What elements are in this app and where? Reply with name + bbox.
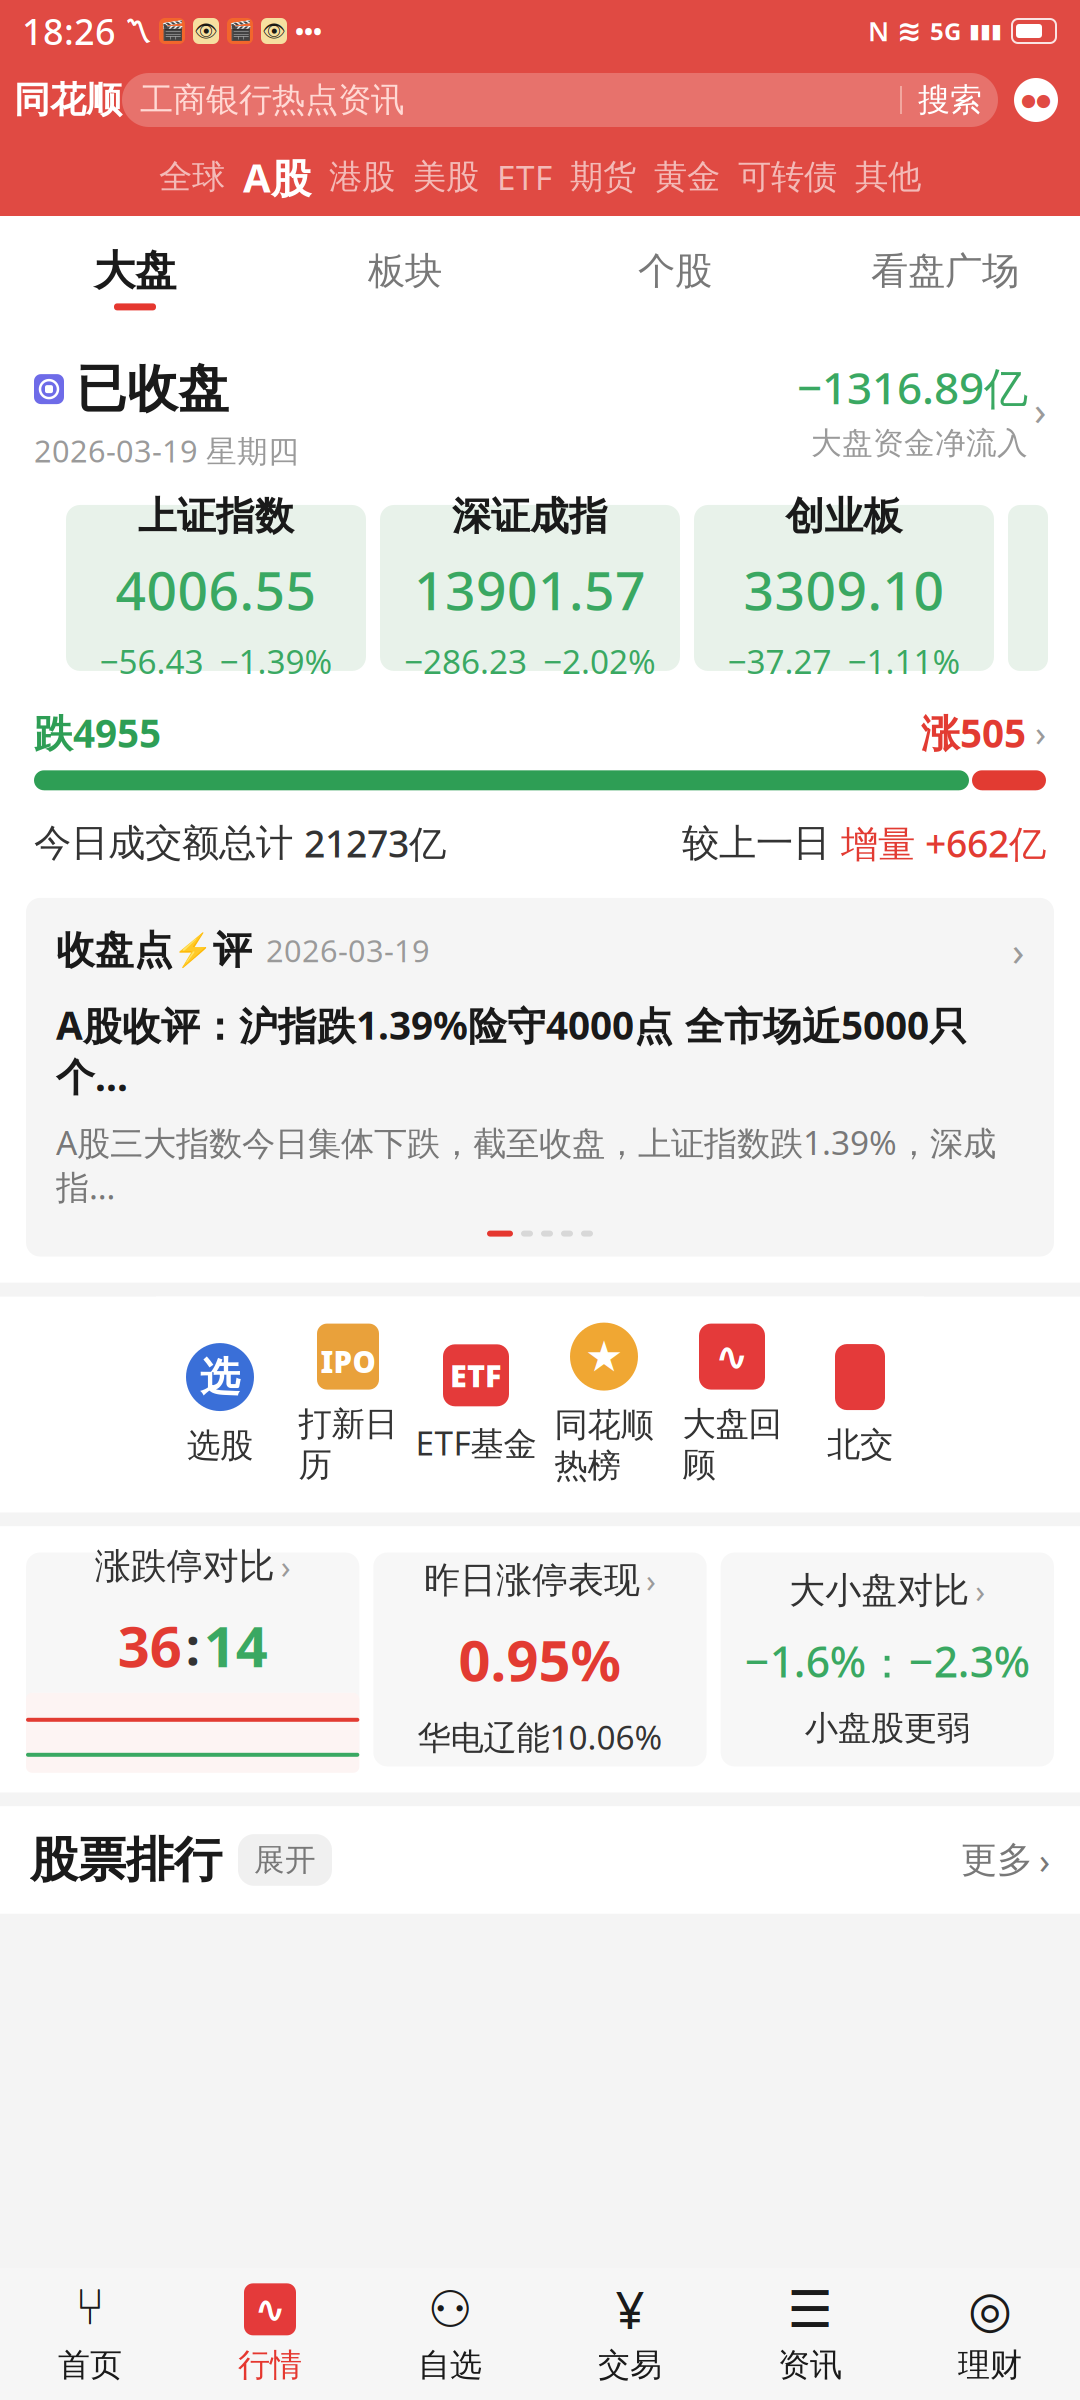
- button[interactable]: ∿: [668, 1324, 796, 1485]
- staticText: −286.23: [404, 639, 527, 683]
- button[interactable]: ETF: [488, 138, 561, 216]
- staticText: 板块: [368, 248, 442, 294]
- staticText: −1.11%: [847, 639, 960, 683]
- button[interactable]: 跌4955: [34, 707, 1046, 758]
- staticText: ›: [281, 1545, 291, 1588]
- button[interactable]: 看盘广场: [810, 232, 1080, 308]
- button[interactable]: 板块: [270, 232, 540, 308]
- staticText: ETF基金: [415, 1420, 536, 1465]
- staticText: 行情: [238, 2345, 302, 2385]
- staticText: 昨日涨停表现: [424, 1558, 640, 1602]
- button[interactable]: 上证指数: [66, 505, 366, 671]
- staticText: 评: [213, 927, 252, 974]
- staticText: ●●: [1021, 90, 1051, 110]
- staticText: 华电辽能10.06%: [417, 1715, 662, 1759]
- staticText: −56.43: [99, 639, 203, 683]
- button[interactable]: 全球: [150, 138, 234, 216]
- staticText: ¥: [615, 2276, 644, 2343]
- button[interactable]: 选: [156, 1343, 284, 1466]
- button[interactable]: 大小盘对比: [721, 1552, 1054, 1766]
- button[interactable]: 收盘点: [26, 898, 1054, 1257]
- staticText: 股票排行: [30, 1830, 222, 1889]
- staticText: 🎬: [160, 20, 183, 42]
- button[interactable]: 大盘: [0, 230, 270, 310]
- staticText: ETF: [497, 155, 552, 199]
- staticText: 涨跌停对比: [95, 1544, 275, 1588]
- button[interactable]: 昨日涨停表现: [373, 1552, 707, 1766]
- staticText: ∿: [715, 1334, 749, 1379]
- staticText: 期货: [570, 156, 636, 197]
- staticText: 自选: [418, 2345, 482, 2385]
- button[interactable]: 黄金: [645, 138, 729, 216]
- button[interactable]: 深证成指: [380, 505, 680, 671]
- staticText: 4006.55: [115, 554, 316, 625]
- button[interactable]: ⚇: [360, 2283, 540, 2385]
- button[interactable]: ⑂: [0, 2283, 180, 2385]
- staticText: 较上一日: [682, 820, 841, 866]
- staticText: 可转债: [738, 156, 837, 197]
- staticText: 展开: [254, 1841, 316, 1879]
- staticText: 理财: [958, 2345, 1022, 2385]
- staticText: 搜索: [918, 80, 982, 120]
- staticText: 5G: [930, 15, 961, 47]
- staticText: −2.02%: [543, 639, 656, 683]
- staticText: 大盘回顾: [682, 1404, 781, 1485]
- button[interactable]: 涨跌停对比: [26, 1552, 359, 1766]
- staticText: ≋: [897, 14, 922, 48]
- staticText: 同花顺: [14, 78, 122, 122]
- staticText: ◎: [968, 2281, 1012, 2338]
- staticText: 已收盘: [76, 358, 229, 420]
- staticText: −1316.89亿: [797, 358, 1028, 416]
- button[interactable]: 北交: [796, 1344, 924, 1465]
- button[interactable]: 工商银行热点资讯: [122, 73, 998, 127]
- staticText: N: [868, 13, 889, 49]
- button[interactable]: ★: [540, 1323, 668, 1486]
- staticText: 黄金: [654, 156, 720, 197]
- button[interactable]: 个股: [540, 232, 810, 308]
- button[interactable]: 可转债: [729, 138, 846, 216]
- staticText: ETF: [450, 1355, 502, 1396]
- staticText: 大盘资金净流入: [811, 424, 1028, 462]
- staticText: 收盘点: [56, 927, 173, 974]
- staticText: 小盘股更弱: [805, 1708, 970, 1748]
- button[interactable]: 展开: [238, 1834, 332, 1886]
- button[interactable]: 智能助手: [998, 70, 1074, 130]
- staticText: 打新日历: [298, 1404, 397, 1485]
- staticText: 跌4955: [34, 707, 161, 758]
- button[interactable]: 更多: [961, 1836, 1050, 1884]
- staticText: 〽: [124, 18, 151, 44]
- staticText: 上证指数: [138, 493, 294, 540]
- staticText: 涨505: [921, 707, 1026, 758]
- staticText: 大小盘对比: [789, 1568, 969, 1613]
- button[interactable]: −1316.89亿: [797, 358, 1046, 462]
- staticText: 深证成指: [452, 493, 608, 540]
- staticText: 增量 +662亿: [841, 818, 1046, 868]
- button[interactable]: 期货: [561, 138, 645, 216]
- staticText: 13901.57: [414, 554, 646, 625]
- staticText: 今日成交额总计: [34, 820, 304, 866]
- button[interactable]: 其他: [846, 138, 930, 216]
- button[interactable]: ∿: [180, 2283, 360, 2385]
- staticText: ›: [1012, 924, 1024, 977]
- staticText: ›: [975, 1569, 985, 1612]
- staticText: ☰: [787, 2281, 832, 2338]
- staticText: :: [186, 1612, 200, 1679]
- staticText: ›: [1026, 709, 1046, 756]
- button[interactable]: ◎: [900, 2283, 1080, 2385]
- button[interactable]: 港股: [320, 138, 404, 216]
- staticText: 大盘: [94, 246, 176, 296]
- button[interactable]: 创业板: [694, 505, 994, 671]
- button[interactable]: ETF: [412, 1344, 540, 1465]
- staticText: 选: [200, 1352, 240, 1402]
- button[interactable]: A股: [234, 138, 320, 216]
- button[interactable]: ☰: [720, 2283, 900, 2385]
- staticText: ›: [1039, 1836, 1050, 1884]
- staticText: −37.27: [727, 639, 831, 683]
- button[interactable]: IPO: [284, 1324, 412, 1485]
- staticText: ⚇: [427, 2281, 472, 2338]
- button[interactable]: 美股: [404, 138, 488, 216]
- staticText: 🎬: [228, 20, 251, 42]
- staticText: 👁: [262, 20, 286, 42]
- staticText: 👁: [194, 20, 218, 42]
- button[interactable]: ¥: [540, 2283, 720, 2385]
